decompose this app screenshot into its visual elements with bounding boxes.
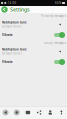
button[interactable]: Vibrate [0,30,67,40]
button[interactable]: Share [33,106,45,119]
staticText: Settings [10,6,30,13]
button[interactable]: Notification tone [0,46,67,57]
button[interactable]: Notification tone [0,19,67,30]
staticText: 12:06 [7,1,16,5]
staticText: Default (tone) [2,25,22,28]
button[interactable]: Back [0,106,11,119]
button[interactable]: Contacts [45,106,56,119]
staticText: Personal messages [41,14,66,18]
button[interactable]: Back [1,6,8,13]
staticText: Vibrate [2,60,13,64]
staticText: Default (tone) [2,52,22,55]
staticText: 66% [55,1,61,5]
button[interactable]: More [56,106,67,119]
button[interactable]: Recents [22,106,33,119]
button[interactable]: Vibrate [0,57,67,67]
staticText: Notification tone [2,48,27,51]
staticText: Vibrate [2,33,13,37]
staticText: Notification tone [2,21,27,24]
staticText: Group messages [44,41,66,45]
button[interactable]: Home [11,106,22,119]
